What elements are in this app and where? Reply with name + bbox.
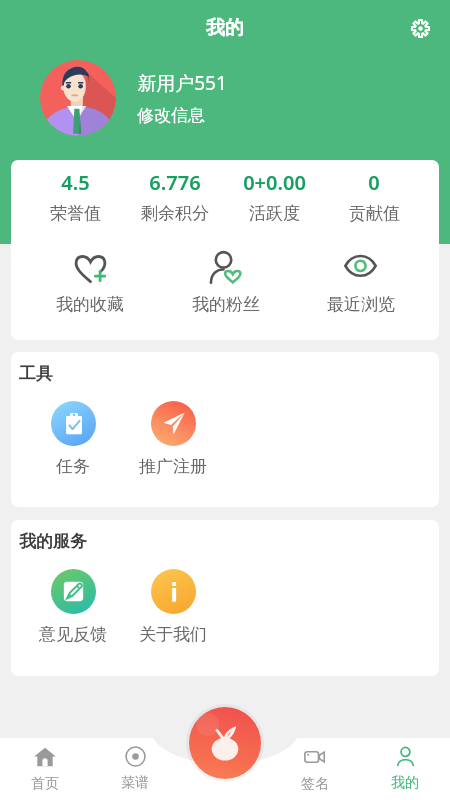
staticText: 剩余积分 xyxy=(141,203,209,224)
staticText: 菜谱 xyxy=(121,774,149,792)
staticText: 首页 xyxy=(31,775,59,793)
staticText: 0+0.00 xyxy=(243,169,306,196)
staticText: 贡献值 xyxy=(349,203,400,224)
staticText: 工具 xyxy=(19,363,53,384)
staticText: 我的粉丝 xyxy=(192,294,260,315)
staticText: 意见反馈 xyxy=(39,624,107,645)
staticText: 我的 xyxy=(391,774,419,792)
staticText: 任务 xyxy=(56,456,90,477)
button[interactable]: 我的收藏 xyxy=(22,251,158,315)
button[interactable]: 我的 xyxy=(360,738,450,800)
staticText: 推广注册 xyxy=(139,456,207,477)
button[interactable]: 最近浏览 xyxy=(293,251,428,315)
staticText: 活跃度 xyxy=(249,203,300,224)
button[interactable]: 新用户551 xyxy=(0,59,450,137)
button[interactable]: Add xyxy=(189,707,261,779)
button[interactable]: 0 xyxy=(324,169,424,224)
staticText: 最近浏览 xyxy=(327,294,395,315)
staticText: 签名 xyxy=(301,775,329,793)
staticText: 修改信息 xyxy=(137,105,205,126)
staticText: 我的收藏 xyxy=(56,294,124,315)
staticText: 0 xyxy=(368,169,380,196)
button[interactable]: 关于我们 xyxy=(123,569,223,645)
staticText: 关于我们 xyxy=(139,624,207,645)
button[interactable]: 我的粉丝 xyxy=(158,251,293,315)
button[interactable]: 首页 xyxy=(0,738,90,800)
staticText: 我的 xyxy=(206,16,244,40)
button[interactable]: 菜谱 xyxy=(90,738,180,800)
staticText: 荣誉值 xyxy=(50,203,101,224)
button[interactable]: 意见反馈 xyxy=(23,569,123,645)
staticText: 6.776 xyxy=(149,169,201,196)
button[interactable]: Settings xyxy=(400,8,440,48)
button[interactable]: 任务 xyxy=(23,401,123,477)
button[interactable]: 推广注册 xyxy=(123,401,223,477)
staticText: 4.5 xyxy=(61,169,90,196)
button[interactable]: 6.776 xyxy=(125,169,224,224)
staticText: 我的服务 xyxy=(19,531,87,552)
button[interactable]: 0+0.00 xyxy=(224,169,324,224)
staticText: 新用户551 xyxy=(137,70,227,96)
button[interactable]: 4.5 xyxy=(26,169,125,224)
button[interactable]: 签名 xyxy=(270,738,360,800)
